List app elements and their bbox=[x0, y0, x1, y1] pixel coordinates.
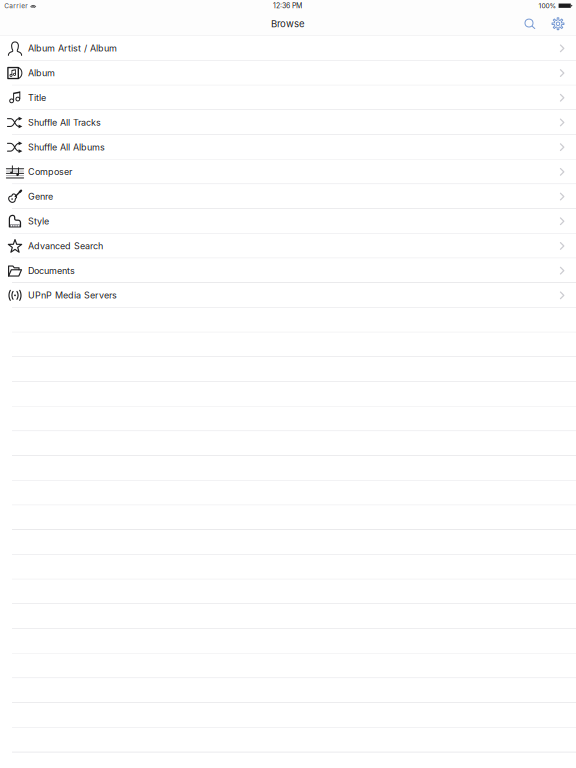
button[interactable]: Documents bbox=[0, 258, 576, 283]
staticText: UPnP Media Servers bbox=[28, 290, 117, 301]
button[interactable]: Shuffle All Tracks bbox=[0, 110, 576, 135]
staticText: Album Artist / Album bbox=[28, 43, 117, 54]
button[interactable]: Settings bbox=[548, 11, 568, 36]
staticText: Carrier bbox=[4, 2, 27, 10]
button[interactable]: Title bbox=[0, 85, 576, 110]
button[interactable]: Genre bbox=[0, 184, 576, 209]
staticText: 100% bbox=[539, 2, 557, 10]
button[interactable]: Search bbox=[520, 11, 540, 36]
staticText: Advanced Search bbox=[28, 240, 103, 251]
button[interactable]: Album Artist / Album bbox=[0, 36, 576, 61]
button[interactable]: Composer bbox=[0, 159, 576, 184]
staticText: Shuffle All Tracks bbox=[28, 117, 101, 128]
staticText: 12:36 PM bbox=[273, 2, 302, 10]
staticText: Composer bbox=[28, 166, 72, 177]
staticText: Style bbox=[28, 216, 49, 227]
button[interactable]: Advanced Search bbox=[0, 234, 576, 258]
staticText: Album bbox=[28, 68, 55, 78]
staticText: Documents bbox=[28, 265, 75, 276]
staticText: Title bbox=[28, 92, 46, 103]
button[interactable]: UPnP Media Servers bbox=[0, 283, 576, 308]
staticText: Browse bbox=[271, 18, 305, 29]
staticText: Shuffle All Albums bbox=[28, 142, 105, 153]
button[interactable]: Shuffle All Albums bbox=[0, 135, 576, 159]
button[interactable]: Style bbox=[0, 209, 576, 234]
button[interactable]: Album bbox=[0, 61, 576, 85]
staticText: Genre bbox=[28, 191, 53, 202]
